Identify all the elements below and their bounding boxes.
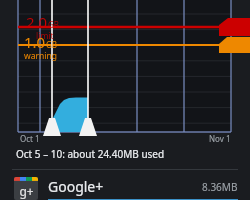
staticText: Oct 1 <box>20 133 40 144</box>
other: Google+ app icon <box>14 177 38 200</box>
staticText: warning <box>24 50 57 62</box>
staticText: 8.36MB <box>202 180 238 194</box>
staticText: limit <box>36 30 54 42</box>
button[interactable]: Google+ app icon <box>0 177 250 200</box>
staticText: 2.0 <box>26 12 48 32</box>
staticText: Google+ <box>48 177 202 196</box>
staticText: GB <box>46 39 58 50</box>
button[interactable]: 2.0 <box>0 0 250 145</box>
staticText: Oct 5 – 10: about 24.40MB used <box>16 147 165 161</box>
staticText: GB <box>48 19 60 30</box>
staticText: g+ <box>19 183 34 199</box>
staticText: 1.0 <box>24 32 46 52</box>
staticText: Nov 1 <box>209 133 231 144</box>
